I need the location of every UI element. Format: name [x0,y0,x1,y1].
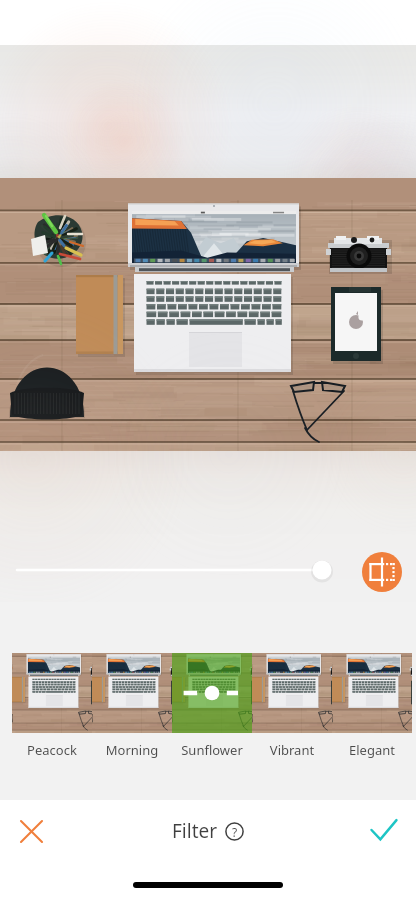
staticText: Sunflower [172,741,252,759]
button[interactable]: Filter [172,818,244,844]
button[interactable]: Peacock [12,653,92,759]
button[interactable]: Vibrant [252,653,332,759]
staticText: Elegant [332,741,412,759]
staticText: Filter [172,818,218,844]
staticText: Vibrant [252,741,332,759]
button[interactable]: Mirror [362,552,402,592]
staticText: ? [232,824,238,840]
staticText: Peacock [12,741,92,759]
button[interactable]: Sunflower [172,653,252,759]
button[interactable]: Elegant [332,653,412,759]
button[interactable]: Apply [363,809,405,851]
staticText: Morning [92,741,172,759]
button[interactable] [0,560,416,580]
button[interactable]: Morning [92,653,172,759]
button[interactable]: Cancel [10,810,52,852]
